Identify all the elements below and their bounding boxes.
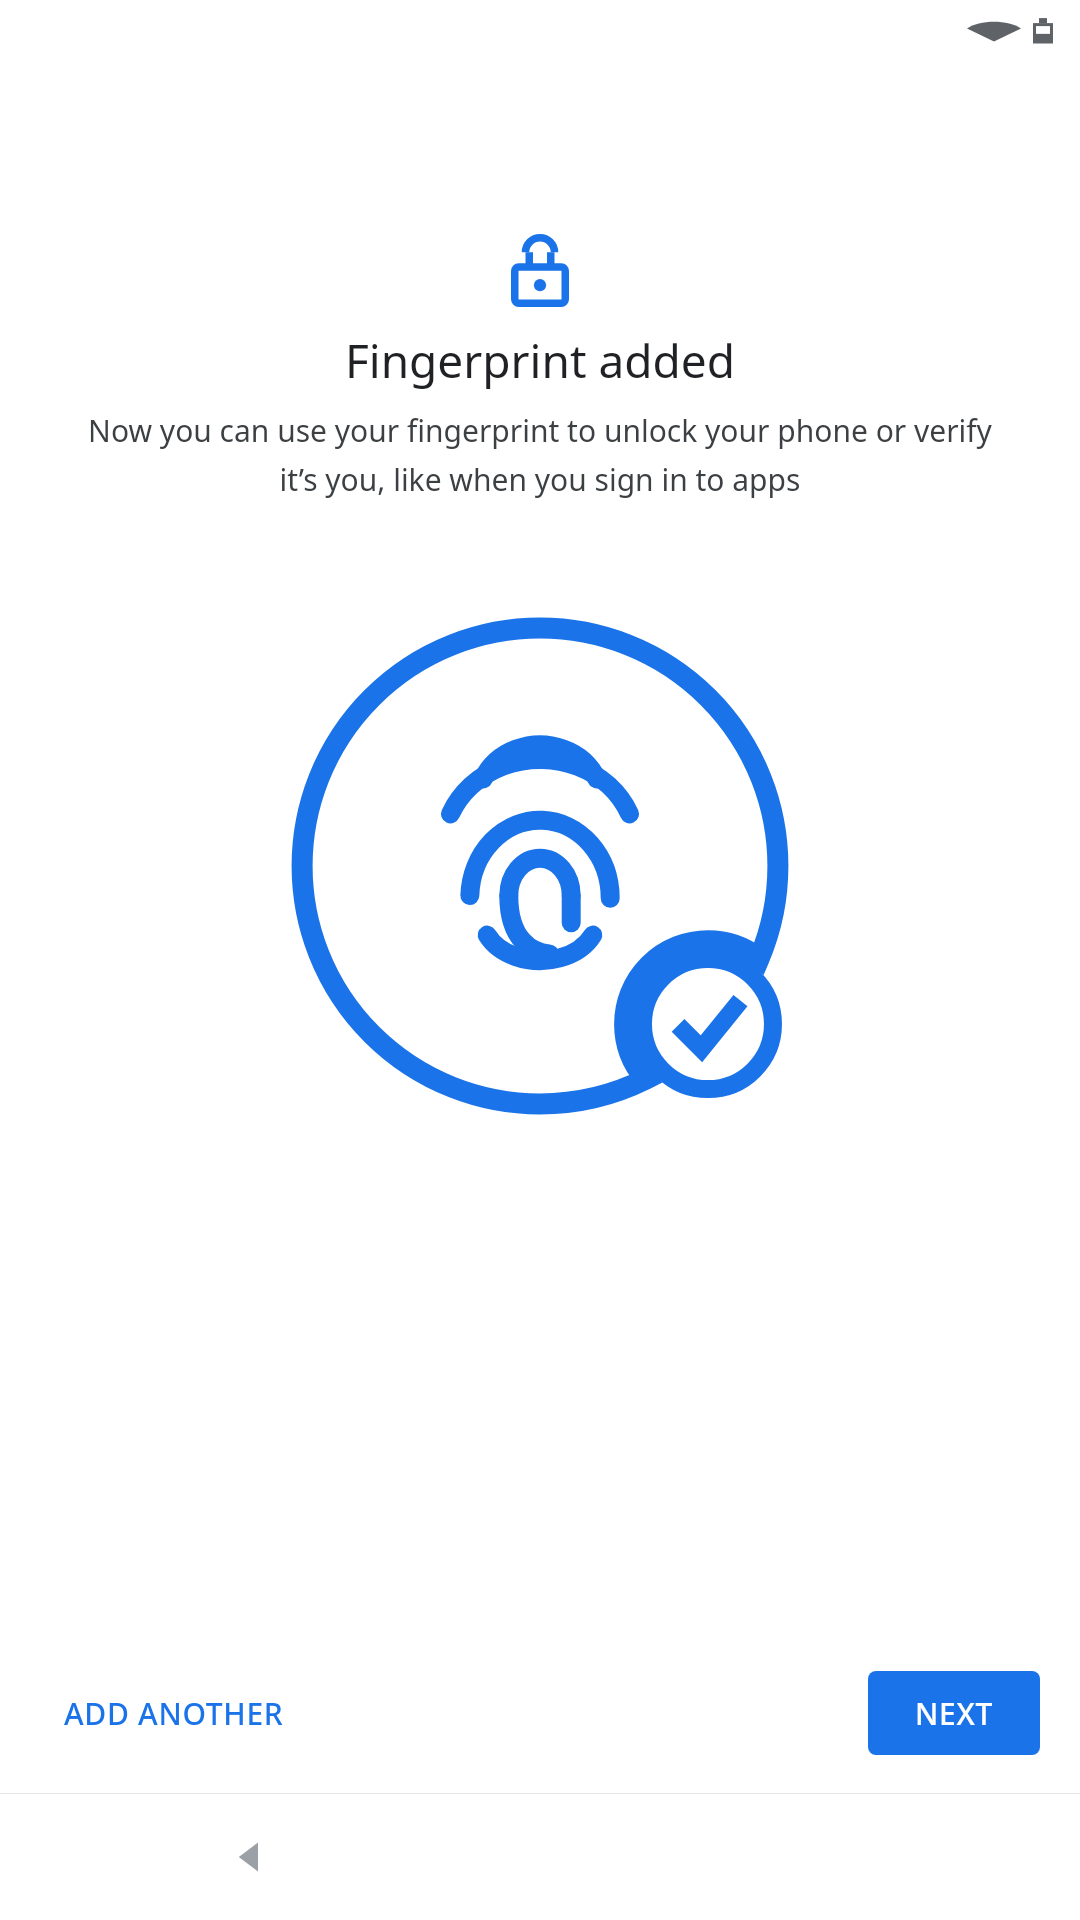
staticText: Now you can use your fingerprint to unlo… (78, 410, 1002, 500)
staticText: Fingerprint added (0, 329, 1080, 392)
staticText: ADD ANOTHER (64, 1693, 284, 1734)
button[interactable]: NEXT (868, 1671, 1040, 1755)
button[interactable]: ADD ANOTHER (40, 1675, 308, 1752)
button[interactable]: Back (186, 1794, 314, 1920)
staticText: NEXT (915, 1693, 993, 1734)
